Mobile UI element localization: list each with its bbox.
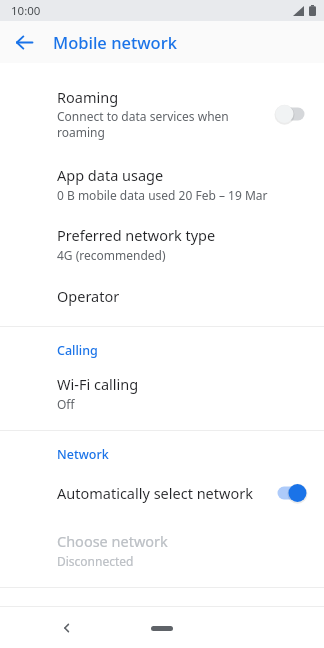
button[interactable]: Wi-Fi calling xyxy=(0,370,324,416)
staticText: Connect to data services when xyxy=(57,108,229,124)
button[interactable]: App data usage xyxy=(0,161,324,207)
staticText: 0 B mobile data used 20 Feb – 19 Mar xyxy=(57,187,268,203)
button[interactable]: Navigate up xyxy=(6,24,42,60)
button[interactable]: Roaming xyxy=(0,80,324,147)
button[interactable]: Home xyxy=(132,616,192,640)
staticText: Disconnected xyxy=(57,553,134,569)
staticText: Calling xyxy=(57,342,98,359)
button[interactable]: Preferred network type xyxy=(0,221,324,267)
button[interactable]: Back xyxy=(52,613,82,643)
staticText: Off xyxy=(57,396,75,412)
staticText: Wi-Fi calling xyxy=(57,374,139,394)
staticText: Choose network xyxy=(57,531,168,551)
staticText: Roaming xyxy=(57,87,119,107)
staticText: 10:00 xyxy=(11,3,41,19)
staticText: Operator xyxy=(57,286,120,306)
staticText: Network xyxy=(57,446,109,463)
staticText: Automatically select network xyxy=(57,483,253,503)
button[interactable]: Choose network xyxy=(0,527,324,573)
staticText: roaming xyxy=(57,124,105,140)
staticText: 4G (recommended) xyxy=(57,247,166,263)
staticText: App data usage xyxy=(57,165,164,185)
staticText: Mobile network xyxy=(53,31,177,53)
button[interactable]: Operator xyxy=(0,281,324,311)
button[interactable]: Automatically select network xyxy=(0,473,324,513)
staticText: Preferred network type xyxy=(57,225,216,245)
